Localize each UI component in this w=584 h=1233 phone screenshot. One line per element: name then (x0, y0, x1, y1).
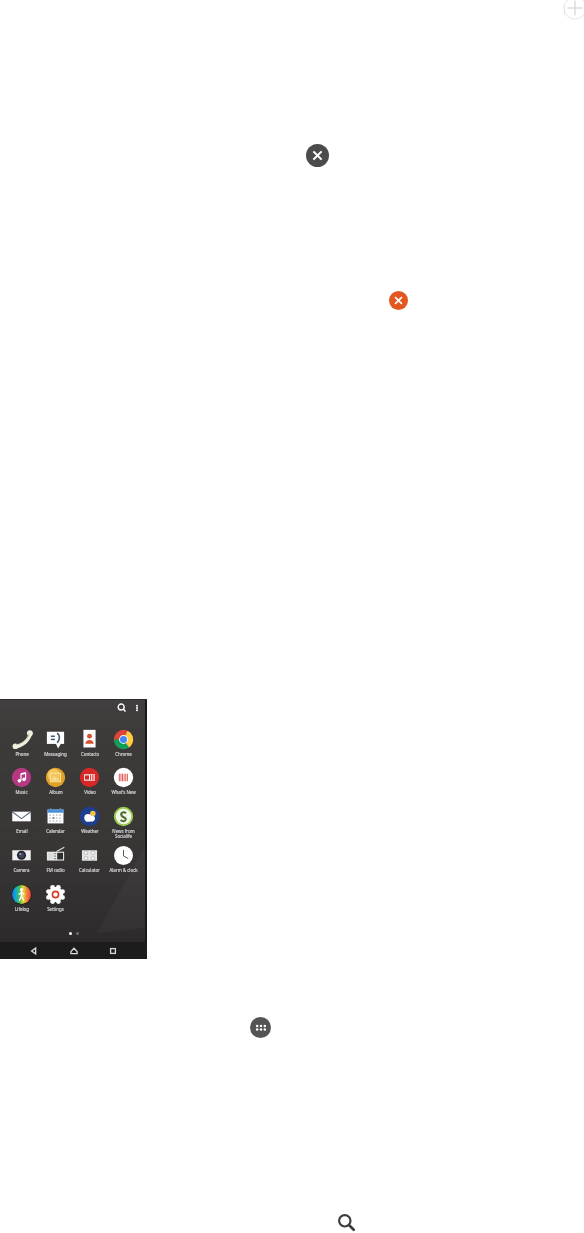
button[interactable]: More options (132, 703, 142, 713)
button[interactable]: Apps (250, 1017, 271, 1038)
staticText: Calculator (79, 867, 100, 873)
button[interactable]: Recents (107, 945, 119, 957)
staticText: Calendar (46, 828, 65, 834)
button[interactable]: Video (73, 767, 106, 801)
button[interactable]: Search apps (117, 703, 127, 713)
button[interactable]: News from Socialife (107, 806, 140, 840)
button[interactable]: Album (39, 767, 72, 801)
staticText: Phone (15, 751, 29, 757)
button[interactable]: Home (68, 945, 80, 957)
button[interactable]: Music (5, 767, 38, 801)
staticText: Camera (13, 867, 30, 873)
staticText: Contacts (81, 751, 99, 757)
staticText: Music (15, 789, 28, 795)
staticText: Chrome (115, 751, 132, 757)
button[interactable]: Search (337, 1213, 356, 1232)
staticText: Email (16, 828, 28, 834)
button[interactable]: Settings (39, 884, 72, 918)
staticText: What's New (111, 789, 136, 795)
button[interactable]: Email (5, 806, 38, 840)
staticText: Messaging (44, 751, 67, 757)
button[interactable]: Contacts (73, 729, 106, 763)
staticText: Lifelog (15, 906, 29, 912)
button[interactable]: Chrome (107, 729, 140, 763)
staticText: Alarm & clock (109, 867, 138, 873)
staticText: Settings (47, 906, 64, 912)
staticText: Album (49, 789, 63, 795)
staticText: Weather (81, 828, 99, 834)
button[interactable]: Calculator (73, 845, 106, 879)
staticText: News from Socialife (112, 828, 135, 839)
button[interactable]: Add (563, 0, 584, 20)
button[interactable]: Weather (73, 806, 106, 840)
staticText: FM radio (46, 867, 65, 873)
button[interactable]: Lifelog (5, 884, 38, 918)
button[interactable]: Phone (5, 729, 38, 763)
button[interactable]: Messaging (39, 729, 72, 763)
button[interactable]: FM radio (39, 845, 72, 879)
button[interactable]: Close (306, 144, 329, 167)
button[interactable]: Alarm & clock (107, 845, 140, 879)
staticText: Video (84, 789, 96, 795)
button[interactable]: Calendar (39, 806, 72, 840)
button[interactable]: What's New (107, 767, 140, 801)
button[interactable]: Close (389, 291, 408, 310)
button[interactable]: Back (28, 945, 40, 957)
button[interactable]: Camera (5, 845, 38, 879)
